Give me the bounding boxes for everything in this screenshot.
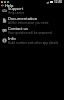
staticText: Contact us bbox=[8, 26, 28, 31]
staticText: 12:30 bbox=[54, 0, 63, 4]
staticText: Documentation bbox=[8, 16, 38, 21]
staticText: Your question will be answered bbox=[8, 31, 52, 35]
button[interactable]: Back bbox=[0, 3, 5, 8]
button[interactable]: Support bbox=[0, 6, 64, 16]
staticText: All the information you need bbox=[8, 21, 49, 25]
staticText: Help centre bbox=[8, 11, 25, 15]
staticText: Support bbox=[8, 6, 24, 11]
button[interactable]: Contact us bbox=[0, 26, 64, 36]
staticText: Help bbox=[5, 3, 14, 8]
staticText: Build number and other app details bbox=[8, 41, 59, 45]
button[interactable]: Documentation bbox=[0, 16, 64, 26]
staticText: Info bbox=[8, 36, 16, 41]
button[interactable]: Info bbox=[0, 36, 64, 46]
